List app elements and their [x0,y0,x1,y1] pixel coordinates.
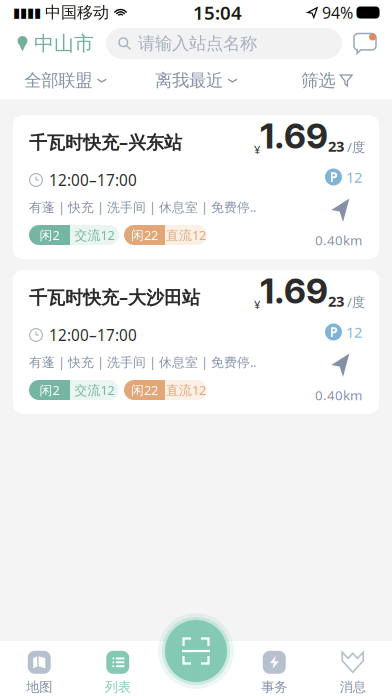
staticText: 请输入站点名称 [138,33,257,54]
staticText: P [329,323,337,341]
button[interactable]: 千瓦时快充–兴东站 [13,115,379,259]
button[interactable]: 千瓦时快充–大沙田站 [13,270,379,414]
button[interactable]: 中山市 [16,31,94,56]
staticText: 事务 [261,679,287,695]
staticText: 千瓦时快充–大沙田站 [29,285,200,309]
button[interactable]: 列表 [78,651,157,695]
staticText: 15:04 [193,0,242,25]
staticText: 闲2 [39,226,59,244]
staticText: ▮▮▮▮ [13,5,41,20]
staticText: 12 [346,167,362,187]
staticText: 0.40km [315,231,362,249]
staticText: 列表 [105,679,131,695]
button[interactable]: 扫一扫 [158,613,234,689]
staticText: 离我最近 [155,70,223,91]
button[interactable]: 全部联盟 [0,70,131,91]
staticText: 消息 [340,679,366,695]
staticText: 交流12 [74,381,114,399]
staticText: P [329,168,337,186]
staticText: 1.69 [260,270,328,312]
button[interactable]: 消息 [313,651,392,695]
staticText: 闲22 [131,226,158,244]
staticText: ¥ [254,141,260,157]
staticText: 12:00–17:00 [49,170,137,190]
staticText: 地图 [26,679,52,695]
staticText: 有蓬 | 快充 | 洗手间 | 休息室 | 免费停.. [29,353,256,371]
staticText: 筛选 [301,70,335,91]
button[interactable]: 地图 [0,651,78,695]
button[interactable]: 消息 [354,33,376,53]
staticText: 23 [328,291,344,311]
staticText: 闲2 [39,381,59,399]
staticText: /度 [344,293,365,311]
button[interactable]: 离我最近 [131,70,261,91]
staticText: 12:00–17:00 [49,325,137,345]
staticText: 闲22 [131,381,158,399]
staticText: 94% [322,2,353,23]
button[interactable]: 事务 [235,651,313,695]
button[interactable]: 筛选 [261,70,392,91]
staticText: 中国移动 [45,3,109,22]
staticText: 直流12 [166,381,206,399]
staticText: ¥ [254,296,260,312]
staticText: 0.40km [315,386,362,404]
staticText: 1.69 [260,115,328,157]
staticText: /度 [344,138,365,156]
button[interactable]: 请输入站点名称 [106,28,342,59]
staticText: 12 [346,322,362,342]
staticText: 千瓦时快充–兴东站 [29,130,182,154]
staticText: 全部联盟 [24,70,92,91]
staticText: 有蓬 | 快充 | 洗手间 | 休息室 | 免费停.. [29,198,256,216]
staticText: 中山市 [34,31,94,56]
staticText: 交流12 [74,226,114,244]
staticText: 23 [328,136,344,156]
staticText: 直流12 [166,226,206,244]
